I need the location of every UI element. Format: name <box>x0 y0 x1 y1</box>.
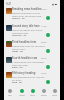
staticText: Supporting copy for the third article en… <box>12 44 45 50</box>
button[interactable]: Breaking news headline <box>4 7 60 23</box>
staticText: Fourth headline row <box>12 56 38 60</box>
staticText: 09:45 <box>41 41 47 44</box>
button[interactable]: Fifth story heading <box>4 71 60 87</box>
button[interactable]: More <box>49 87 60 98</box>
other: Unread <box>46 16 50 20</box>
other: Unread <box>46 33 50 37</box>
staticText: Second story title here <box>12 24 40 28</box>
button[interactable]: Latest <box>16 87 27 98</box>
staticText: Local <box>30 94 35 97</box>
other: Unread <box>46 65 50 69</box>
staticText: Daily · 8h <box>12 65 23 68</box>
staticText: 9:41 <box>6 2 12 6</box>
staticText: A description line that wraps over two r… <box>12 60 45 66</box>
staticText: Final preview text for the last list ent… <box>12 75 45 81</box>
staticText: Breaking news headline <box>12 7 42 11</box>
button[interactable]: Third headline item <box>4 40 60 56</box>
staticText: Source · 2h <box>12 16 25 19</box>
button[interactable]: Saved <box>38 87 49 98</box>
button[interactable]: Local <box>27 87 38 98</box>
staticText: More <box>52 94 57 97</box>
button[interactable]: Top <box>4 87 16 98</box>
other: Unread <box>46 49 50 53</box>
staticText: Wire · 9h <box>12 80 22 83</box>
staticText: 12:04 <box>41 8 47 11</box>
staticText: Channel · 4h <box>12 33 27 36</box>
staticText: Detailed summary of the news story conti… <box>12 11 45 17</box>
staticText: News · 6h <box>12 49 24 52</box>
staticText: Top <box>8 94 12 97</box>
staticText: 07:02 <box>41 72 47 75</box>
other: Unread <box>46 80 50 84</box>
button[interactable]: Second story title here <box>4 24 60 40</box>
button[interactable]: Fourth headline row <box>4 56 60 72</box>
staticText: ▲ ▬ <box>52 2 58 6</box>
staticText: Fifth story heading <box>12 71 36 75</box>
staticText: Latest <box>19 94 25 97</box>
staticText: 08:10 <box>41 57 47 60</box>
staticText: Third headline item <box>12 40 37 44</box>
staticText: 11:20 <box>41 25 47 28</box>
staticText: Saved <box>41 94 47 97</box>
staticText: More text about this article spanning li… <box>12 28 45 34</box>
